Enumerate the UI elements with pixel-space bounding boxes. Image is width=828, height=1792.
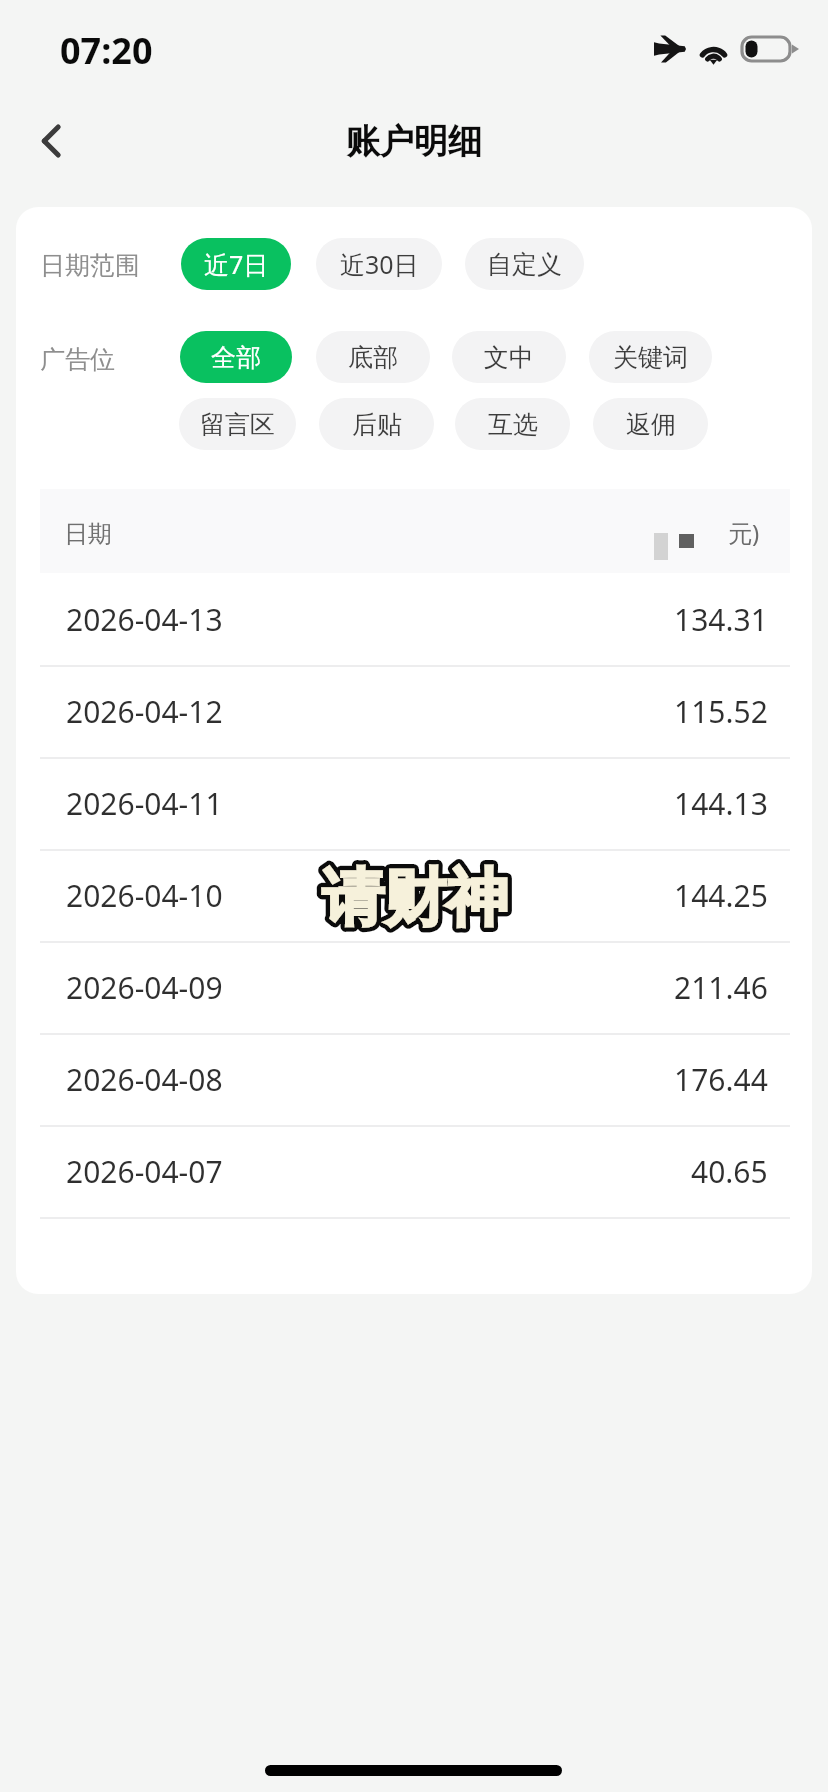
staticText: 请财神 xyxy=(322,859,508,937)
button[interactable]: 近7日 xyxy=(181,238,291,290)
staticText: 留言区 xyxy=(200,409,275,440)
button[interactable]: 2026-04-12 xyxy=(40,665,790,757)
staticText: 自定义 xyxy=(487,249,562,280)
button[interactable]: 后贴 xyxy=(319,398,434,450)
staticText: 134.31 xyxy=(674,599,768,640)
staticText: 176.44 xyxy=(674,1059,768,1100)
staticText: 关键词 xyxy=(613,342,688,373)
staticText: 2026-04-13 xyxy=(66,599,223,640)
button[interactable]: 自定义 xyxy=(465,238,584,290)
button[interactable]: 2026-04-09 xyxy=(40,941,790,1033)
staticText: 211.46 xyxy=(674,967,768,1008)
staticText: 2026-04-07 xyxy=(66,1151,223,1192)
button[interactable]: 文中 xyxy=(452,331,566,383)
staticText: 2026-04-11 xyxy=(66,783,223,824)
staticText: 全部 xyxy=(211,342,261,373)
staticText: 07:20 xyxy=(60,26,153,75)
staticText: 文中 xyxy=(484,342,534,373)
button[interactable]: 关键词 xyxy=(589,331,712,383)
button[interactable]: 返佣 xyxy=(593,398,708,450)
staticText: 近7日 xyxy=(204,247,269,281)
staticText: 115.52 xyxy=(674,691,768,732)
button[interactable]: 2026-04-13 xyxy=(40,573,790,665)
staticText: 后贴 xyxy=(352,409,402,440)
button[interactable]: 2026-04-11 xyxy=(40,757,790,849)
staticText: 元) xyxy=(728,516,760,549)
staticText: 2026-04-12 xyxy=(66,691,223,732)
staticText: 广告位 xyxy=(40,344,115,375)
button[interactable]: Back xyxy=(22,110,84,172)
button[interactable]: 近30日 xyxy=(316,238,442,290)
button[interactable]: 2026-04-08 xyxy=(40,1033,790,1125)
staticText: 日期范围 xyxy=(40,250,140,281)
staticText: 日期 xyxy=(64,519,112,549)
staticText: 底部 xyxy=(348,342,398,373)
staticText: 近30日 xyxy=(340,247,419,281)
staticText: 2026-04-10 xyxy=(66,875,223,916)
button[interactable]: 留言区 xyxy=(179,398,296,450)
staticText: 40.65 xyxy=(691,1151,768,1192)
staticText: 账户明细 xyxy=(0,120,828,163)
staticText: 请财神 xyxy=(322,859,508,937)
button[interactable]: 互选 xyxy=(455,398,570,450)
staticText: 返佣 xyxy=(626,409,676,440)
staticText: 144.13 xyxy=(674,783,768,824)
staticText: 2026-04-09 xyxy=(66,967,223,1008)
button[interactable]: 2026-04-07 xyxy=(40,1125,790,1217)
staticText: 144.25 xyxy=(674,875,768,916)
staticText: 2026-04-08 xyxy=(66,1059,223,1100)
button[interactable]: 全部 xyxy=(180,331,292,383)
button[interactable]: 2026-04-10 xyxy=(40,849,790,941)
staticText: 互选 xyxy=(488,409,538,440)
button[interactable]: 底部 xyxy=(316,331,430,383)
